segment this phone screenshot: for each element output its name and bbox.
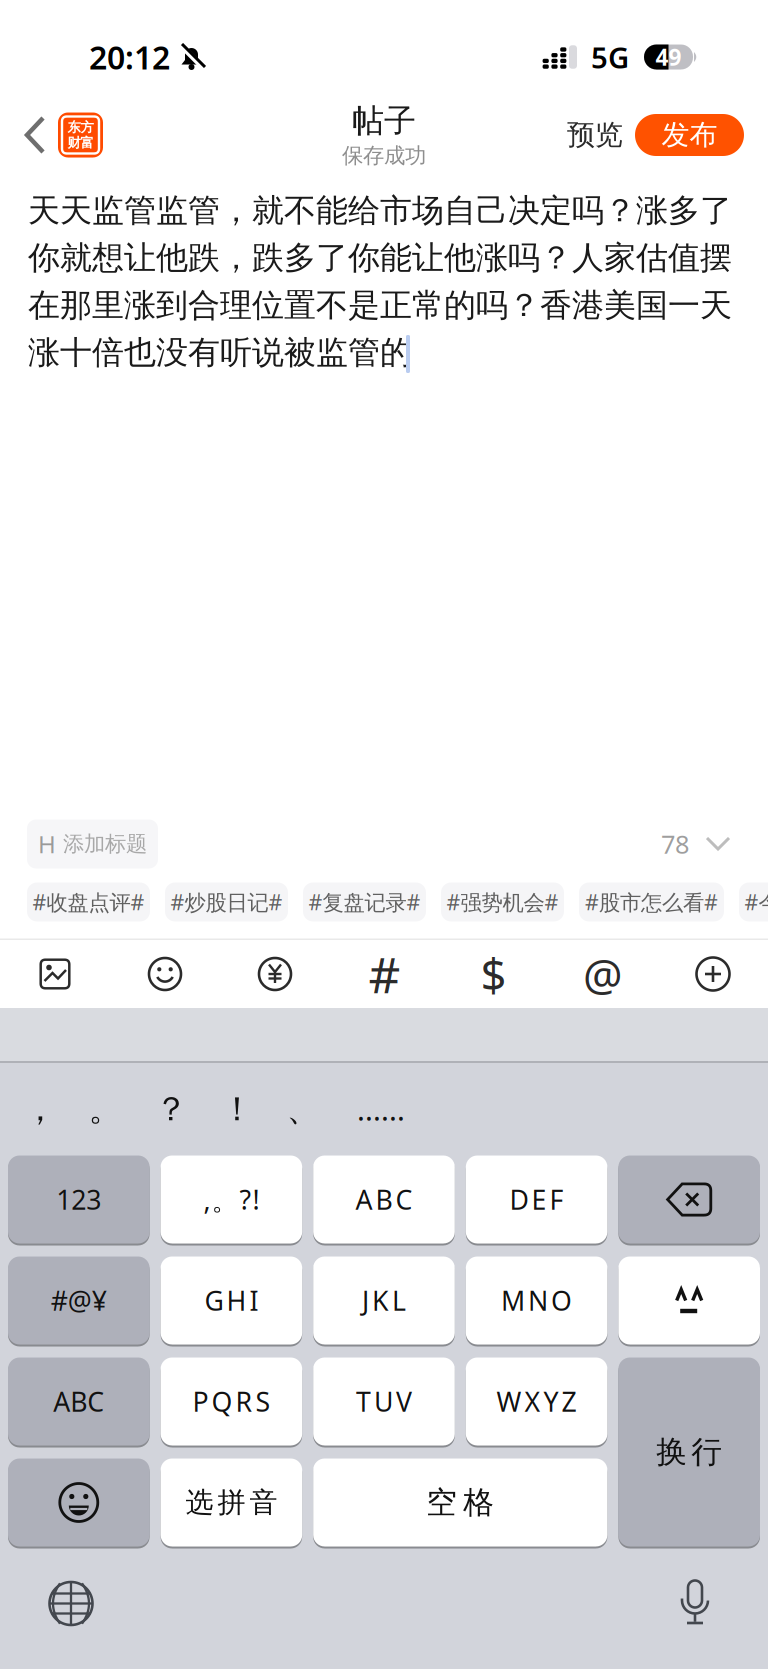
button[interactable]: #今日看盘# <box>739 882 768 921</box>
staticText: 帖子 <box>352 101 416 140</box>
staticText: 保存成功 <box>342 143 426 169</box>
button[interactable]: 股票代码 <box>439 940 548 1008</box>
staticText: ， <box>23 1089 56 1130</box>
staticText: PQRS <box>192 1384 270 1419</box>
button[interactable]: #炒股日记# <box>165 882 288 921</box>
staticText: 天天监管监管，就不能给市场自己决定吗？涨多了你就想让他跌，跌多了你能让他涨吗？人… <box>28 191 732 372</box>
staticText: WXYZ <box>497 1384 577 1419</box>
staticText: #今日看盘# <box>744 888 768 916</box>
staticText: $ <box>480 944 506 1004</box>
staticText: #强势机会# <box>446 888 558 916</box>
staticText: 预览 <box>567 118 623 152</box>
button[interactable]: 表情 <box>8 1458 150 1546</box>
button[interactable]: #复盘记录# <box>303 882 426 921</box>
staticText: #复盘记录# <box>308 888 420 916</box>
staticText: 东方 <box>67 119 93 135</box>
button[interactable]: ,。?! <box>161 1155 302 1243</box>
button[interactable]: JKL <box>313 1256 455 1344</box>
button[interactable]: 更多 <box>658 940 768 1008</box>
button[interactable]: 发布 <box>635 114 744 156</box>
button[interactable]: MNO <box>466 1256 607 1344</box>
button[interactable]: ！ <box>204 1079 270 1139</box>
button[interactable]: ABC <box>8 1357 150 1445</box>
staticText: @ <box>583 945 623 1003</box>
staticText: #炒股日记# <box>170 888 282 916</box>
button[interactable]: WXYZ <box>466 1357 607 1445</box>
button[interactable]: 空格 <box>313 1458 607 1546</box>
button[interactable]: ？ <box>138 1079 204 1139</box>
staticText: 换行 <box>656 1433 722 1471</box>
button[interactable]: DEF <box>466 1155 607 1243</box>
button[interactable]: 表情 <box>110 940 220 1008</box>
button[interactable]: 删除 <box>618 1155 760 1243</box>
button[interactable]: H <box>27 819 158 868</box>
button[interactable]: 。 <box>72 1079 138 1139</box>
staticText: TUV <box>356 1384 412 1419</box>
button[interactable]: #@¥ <box>8 1256 150 1344</box>
button[interactable]: ABC <box>313 1155 455 1243</box>
staticText: ,。?! <box>203 1182 259 1217</box>
staticText: 空格 <box>426 1484 494 1521</box>
button[interactable]: TUV <box>313 1357 455 1445</box>
button[interactable]: 语音输入 <box>678 1578 712 1628</box>
staticText: 5G <box>591 37 629 76</box>
staticText: ？ <box>154 1089 187 1130</box>
button[interactable]: 收起键盘 <box>706 837 730 851</box>
button[interactable]: 、 <box>270 1079 336 1139</box>
button[interactable]: 话题 <box>330 940 439 1008</box>
staticText: 20:12 <box>89 36 170 78</box>
button[interactable]: GHI <box>161 1256 302 1344</box>
staticText: 、 <box>286 1089 319 1130</box>
button[interactable]: #收盘点评# <box>27 882 150 921</box>
staticText: 发布 <box>661 118 717 152</box>
button[interactable]: #强势机会# <box>441 882 564 921</box>
staticText: 财富 <box>67 134 93 151</box>
button[interactable]: 返回 <box>24 112 103 157</box>
staticText: # <box>368 941 400 1007</box>
staticText: GHI <box>204 1283 258 1318</box>
staticText: ...... <box>357 1090 405 1129</box>
staticText: 78 <box>661 827 689 861</box>
button[interactable]: ， <box>8 1079 72 1139</box>
staticText: 。 <box>88 1089 121 1130</box>
button[interactable]: 提及 <box>548 940 658 1008</box>
staticText: JKL <box>362 1283 406 1318</box>
button[interactable]: 换行 <box>618 1357 760 1546</box>
button[interactable]: 分词 <box>618 1256 760 1344</box>
staticText: ABC <box>355 1182 412 1217</box>
button[interactable]: ...... <box>336 1079 426 1139</box>
staticText: 49 <box>655 42 681 72</box>
staticText: 123 <box>56 1182 101 1217</box>
button[interactable]: 切换输入法 <box>48 1580 94 1626</box>
button[interactable]: #股市怎么看# <box>579 882 724 921</box>
staticText: #股市怎么看# <box>585 888 718 916</box>
button[interactable]: 预览 <box>567 118 623 152</box>
button[interactable]: 123 <box>8 1155 150 1243</box>
button[interactable]: 选拼音 <box>161 1458 302 1546</box>
button[interactable]: 股票 <box>220 940 330 1008</box>
staticText: MNO <box>501 1283 572 1318</box>
staticText: #@¥ <box>51 1283 107 1318</box>
button[interactable]: PQRS <box>161 1357 302 1445</box>
staticText: 选拼音 <box>185 1485 277 1520</box>
staticText: 添加标题 <box>63 831 147 857</box>
staticText: #收盘点评# <box>32 888 144 916</box>
staticText: DEF <box>510 1182 564 1217</box>
staticText: ！ <box>220 1089 253 1130</box>
staticText: H <box>38 828 56 860</box>
button[interactable]: 插入图片 <box>0 940 110 1008</box>
staticText: ABC <box>53 1384 104 1419</box>
